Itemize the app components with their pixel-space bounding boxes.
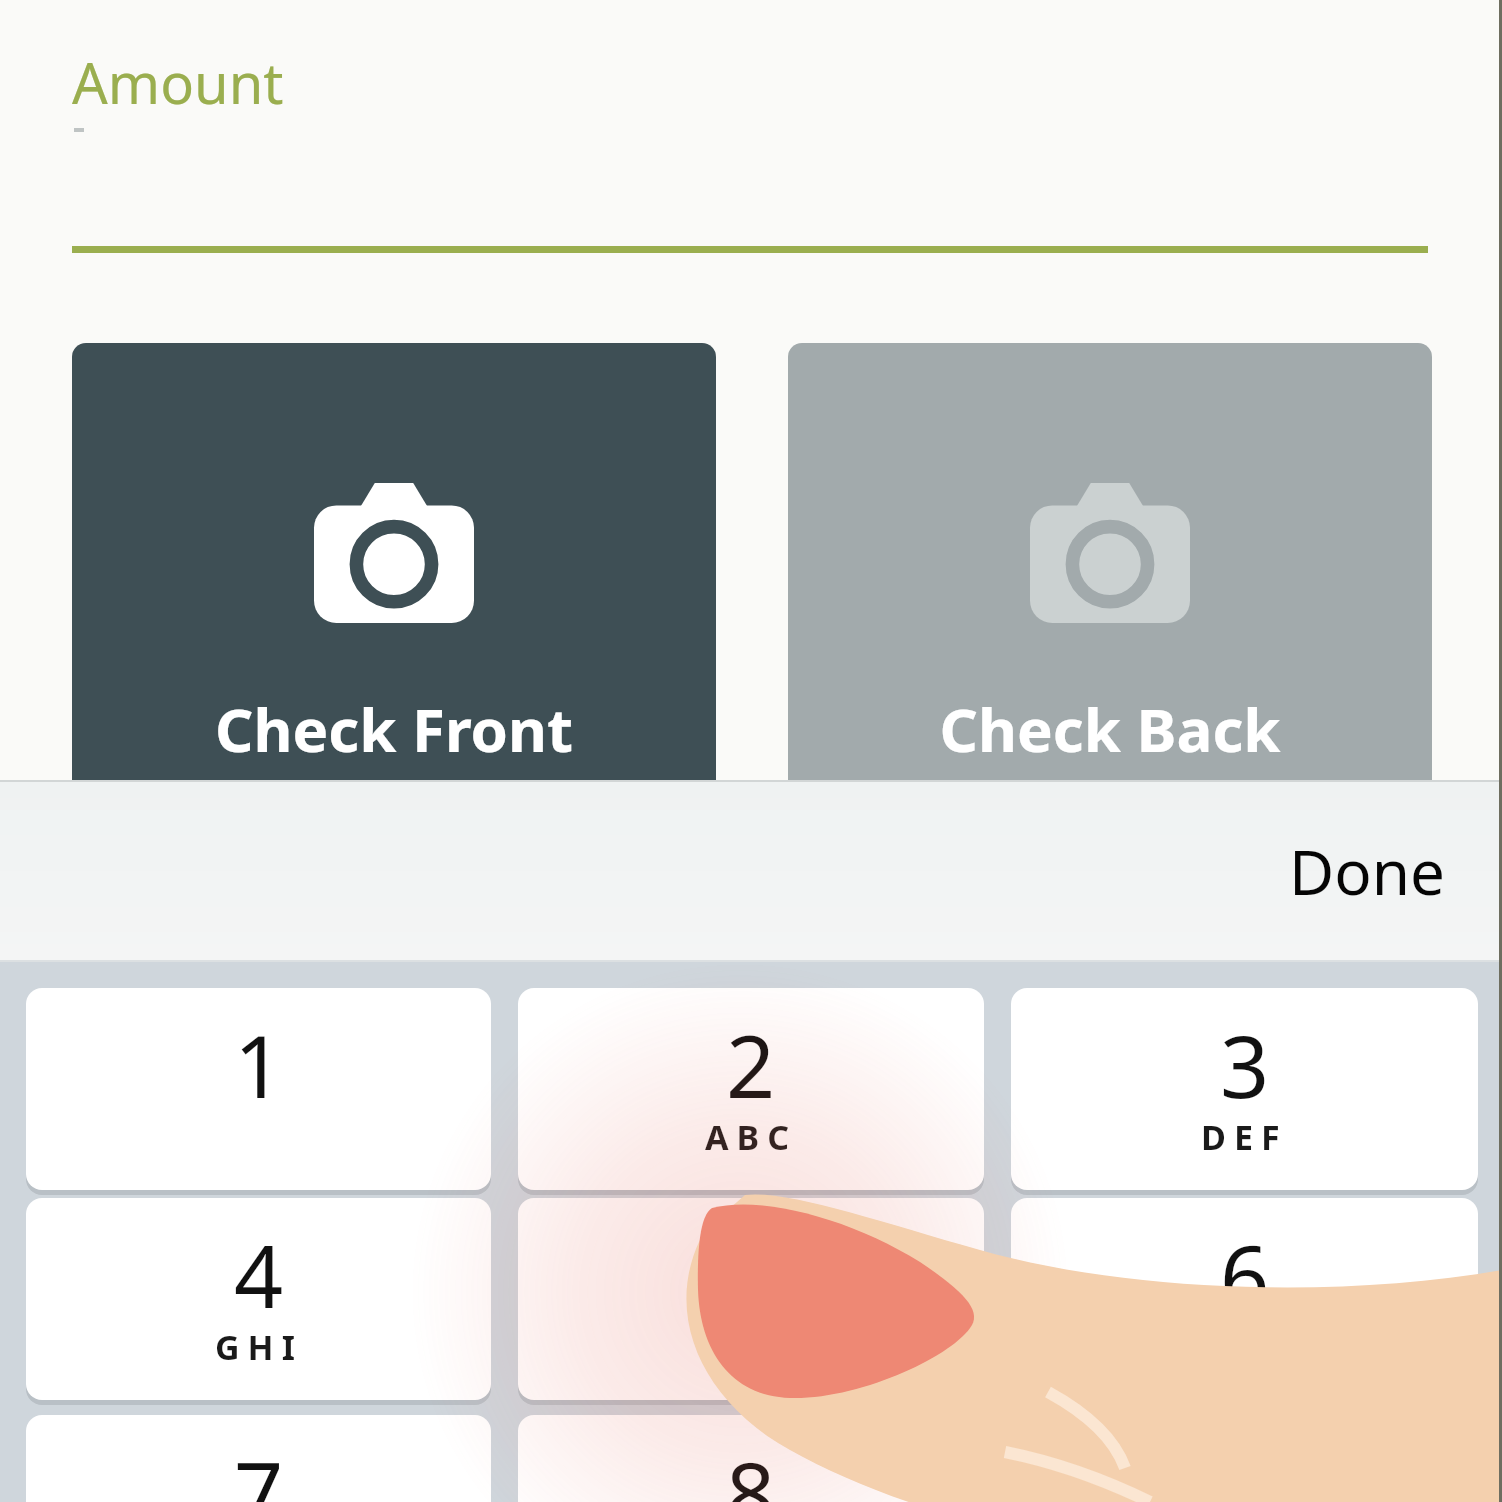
button[interactable]: 5 bbox=[518, 1198, 984, 1400]
button[interactable]: 3 bbox=[1011, 988, 1478, 1190]
button[interactable]: 6 bbox=[1011, 1198, 1478, 1400]
button[interactable]: 4 bbox=[26, 1198, 491, 1400]
staticText: 7 bbox=[234, 1433, 284, 1502]
button[interactable]: 1 bbox=[26, 988, 491, 1190]
staticText: 1 bbox=[234, 1006, 284, 1123]
staticText: JKL bbox=[713, 1324, 790, 1370]
button[interactable]: Check Back bbox=[788, 343, 1432, 843]
staticText: GHI bbox=[215, 1324, 303, 1370]
staticText: DEF bbox=[1201, 1114, 1288, 1160]
staticText: Amount bbox=[72, 44, 284, 120]
staticText: 3 bbox=[1220, 1006, 1270, 1123]
staticText: Check Back bbox=[788, 688, 1432, 770]
button[interactable]: 2 bbox=[518, 988, 984, 1190]
staticText: 2 bbox=[726, 1006, 776, 1123]
staticText: Check Front bbox=[72, 688, 716, 770]
staticText: Done bbox=[1289, 829, 1446, 913]
button[interactable]: Check Front bbox=[72, 343, 716, 843]
button[interactable]: Done bbox=[1277, 819, 1458, 923]
staticText: 8 bbox=[726, 1433, 776, 1502]
button[interactable]: 7 bbox=[26, 1415, 491, 1502]
staticText: ABC bbox=[705, 1114, 797, 1160]
button[interactable]: 8 bbox=[518, 1415, 984, 1502]
staticText: 6 bbox=[1220, 1216, 1270, 1333]
staticText: 4 bbox=[234, 1216, 284, 1333]
button[interactable]: 9 bbox=[1011, 1415, 1478, 1502]
